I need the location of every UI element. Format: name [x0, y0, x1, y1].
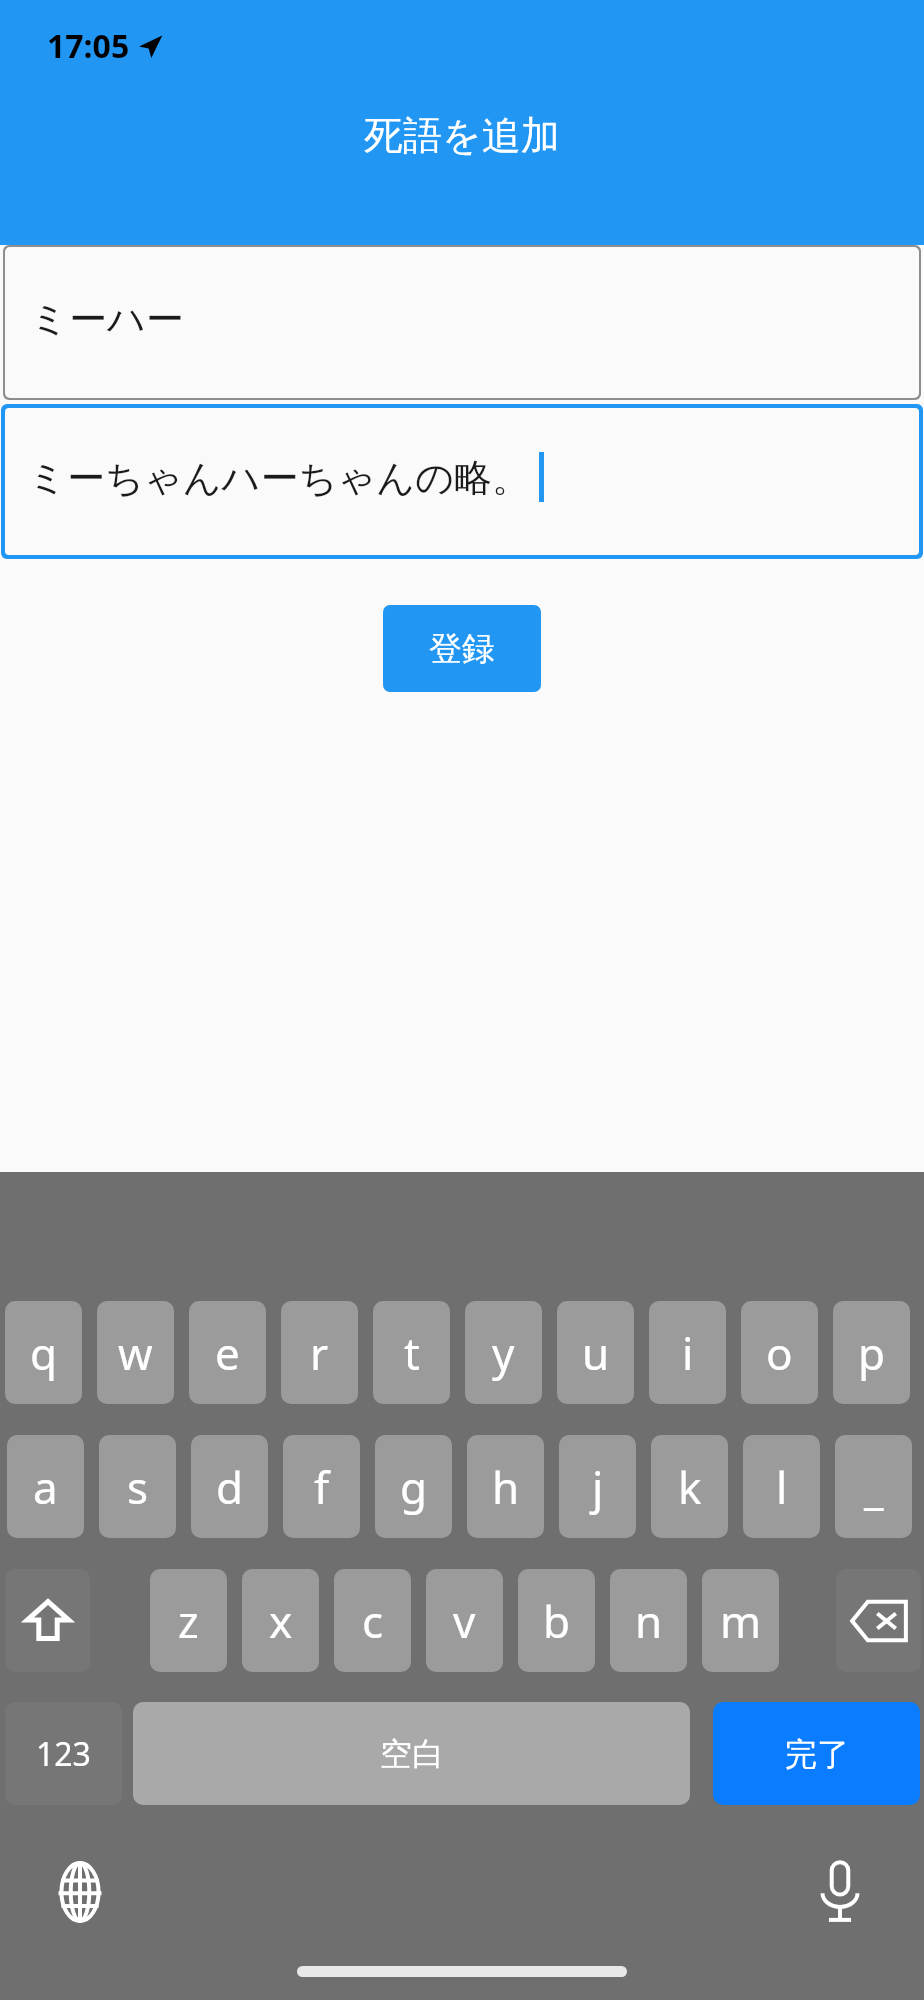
staticText: w — [118, 1323, 153, 1383]
button[interactable]: b — [518, 1569, 595, 1672]
staticText: i — [682, 1323, 694, 1383]
button[interactable]: x — [242, 1569, 319, 1672]
button[interactable]: z — [150, 1569, 227, 1672]
button[interactable]: h — [467, 1435, 544, 1538]
button[interactable]: s — [99, 1435, 176, 1538]
staticText: o — [766, 1323, 793, 1383]
staticText: l — [776, 1457, 788, 1517]
button[interactable]: Dictate — [800, 1852, 880, 1932]
button[interactable]: d — [191, 1435, 268, 1538]
button[interactable]: l — [743, 1435, 820, 1538]
staticText: b — [543, 1591, 571, 1651]
staticText: 死語を追加 — [364, 111, 560, 160]
staticText: n — [635, 1591, 663, 1651]
button[interactable]: v — [426, 1569, 503, 1672]
button[interactable]: j — [559, 1435, 636, 1538]
button[interactable]: i — [649, 1301, 726, 1404]
button[interactable]: c — [334, 1569, 411, 1672]
button[interactable]: f — [283, 1435, 360, 1538]
button[interactable]: n — [610, 1569, 687, 1672]
staticText: c — [362, 1591, 384, 1651]
button[interactable]: q — [5, 1301, 82, 1404]
button[interactable]: e — [189, 1301, 266, 1404]
button[interactable]: k — [651, 1435, 728, 1538]
staticText: 17:05 — [47, 24, 130, 68]
button[interactable]: ミーハー — [3, 245, 921, 400]
staticText: f — [314, 1457, 330, 1517]
button[interactable]: Delete — [836, 1569, 921, 1672]
staticText: ミーハー — [30, 295, 184, 343]
button[interactable]: _ — [835, 1435, 912, 1538]
staticText: z — [178, 1591, 199, 1651]
button[interactable]: w — [97, 1301, 174, 1404]
staticText: v — [453, 1591, 476, 1651]
button[interactable]: Shift — [5, 1569, 90, 1672]
button[interactable]: ミーちゃんハーちゃんの略。 — [1, 404, 923, 559]
staticText: 空白 — [380, 1734, 444, 1774]
button[interactable]: 登録 — [383, 605, 541, 692]
button[interactable]: m — [702, 1569, 779, 1672]
button[interactable]: t — [373, 1301, 450, 1404]
staticText: j — [592, 1457, 604, 1517]
staticText: q — [30, 1323, 58, 1383]
staticText: a — [33, 1457, 58, 1517]
button[interactable]: r — [281, 1301, 358, 1404]
staticText: 完了 — [785, 1734, 849, 1774]
button[interactable]: u — [557, 1301, 634, 1404]
staticText: t — [404, 1323, 420, 1383]
staticText: u — [582, 1323, 610, 1383]
button[interactable]: Change keyboard — [40, 1852, 120, 1932]
staticText: ミーちゃんハーちゃんの略。 — [28, 454, 531, 502]
staticText: y — [492, 1323, 515, 1383]
button[interactable]: 完了 — [713, 1702, 920, 1805]
button[interactable]: 空白 — [133, 1702, 690, 1805]
button[interactable]: 123 — [5, 1702, 122, 1805]
button[interactable]: y — [465, 1301, 542, 1404]
staticText: g — [400, 1457, 428, 1517]
staticText: _ — [864, 1457, 884, 1517]
staticText: k — [678, 1457, 702, 1517]
staticText: r — [310, 1323, 329, 1383]
staticText: 123 — [36, 1732, 91, 1776]
staticText: s — [127, 1457, 149, 1517]
staticText: e — [215, 1323, 240, 1383]
staticText: h — [492, 1457, 520, 1517]
button[interactable]: p — [833, 1301, 910, 1404]
button[interactable]: a — [7, 1435, 84, 1538]
button[interactable]: o — [741, 1301, 818, 1404]
staticText: m — [720, 1591, 762, 1651]
staticText: p — [858, 1323, 886, 1383]
button[interactable]: g — [375, 1435, 452, 1538]
staticText: d — [216, 1457, 244, 1517]
staticText: 登録 — [429, 628, 495, 670]
staticText: x — [269, 1591, 293, 1651]
